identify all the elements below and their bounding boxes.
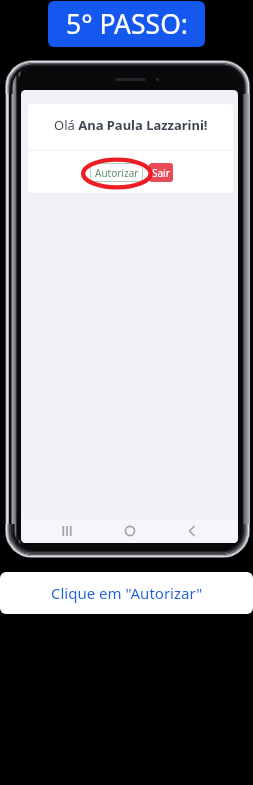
button[interactable]: Recent apps <box>50 519 84 543</box>
staticText: 5° PASSO: <box>66 6 188 42</box>
staticText: Olá Ana Paula Lazzarini! <box>54 116 208 134</box>
button[interactable]: Back <box>175 519 209 543</box>
button[interactable]: Sair <box>149 163 173 182</box>
button[interactable]: Clique em "Autorizar" <box>0 572 253 614</box>
staticText: Clique em "Autorizar" <box>51 583 203 603</box>
staticText: Autorizar <box>95 166 139 180</box>
button[interactable]: Home <box>113 519 147 543</box>
staticText: Sair <box>152 166 170 180</box>
button[interactable]: 5° PASSO: <box>48 1 205 47</box>
button[interactable]: Autorizar <box>90 163 143 182</box>
